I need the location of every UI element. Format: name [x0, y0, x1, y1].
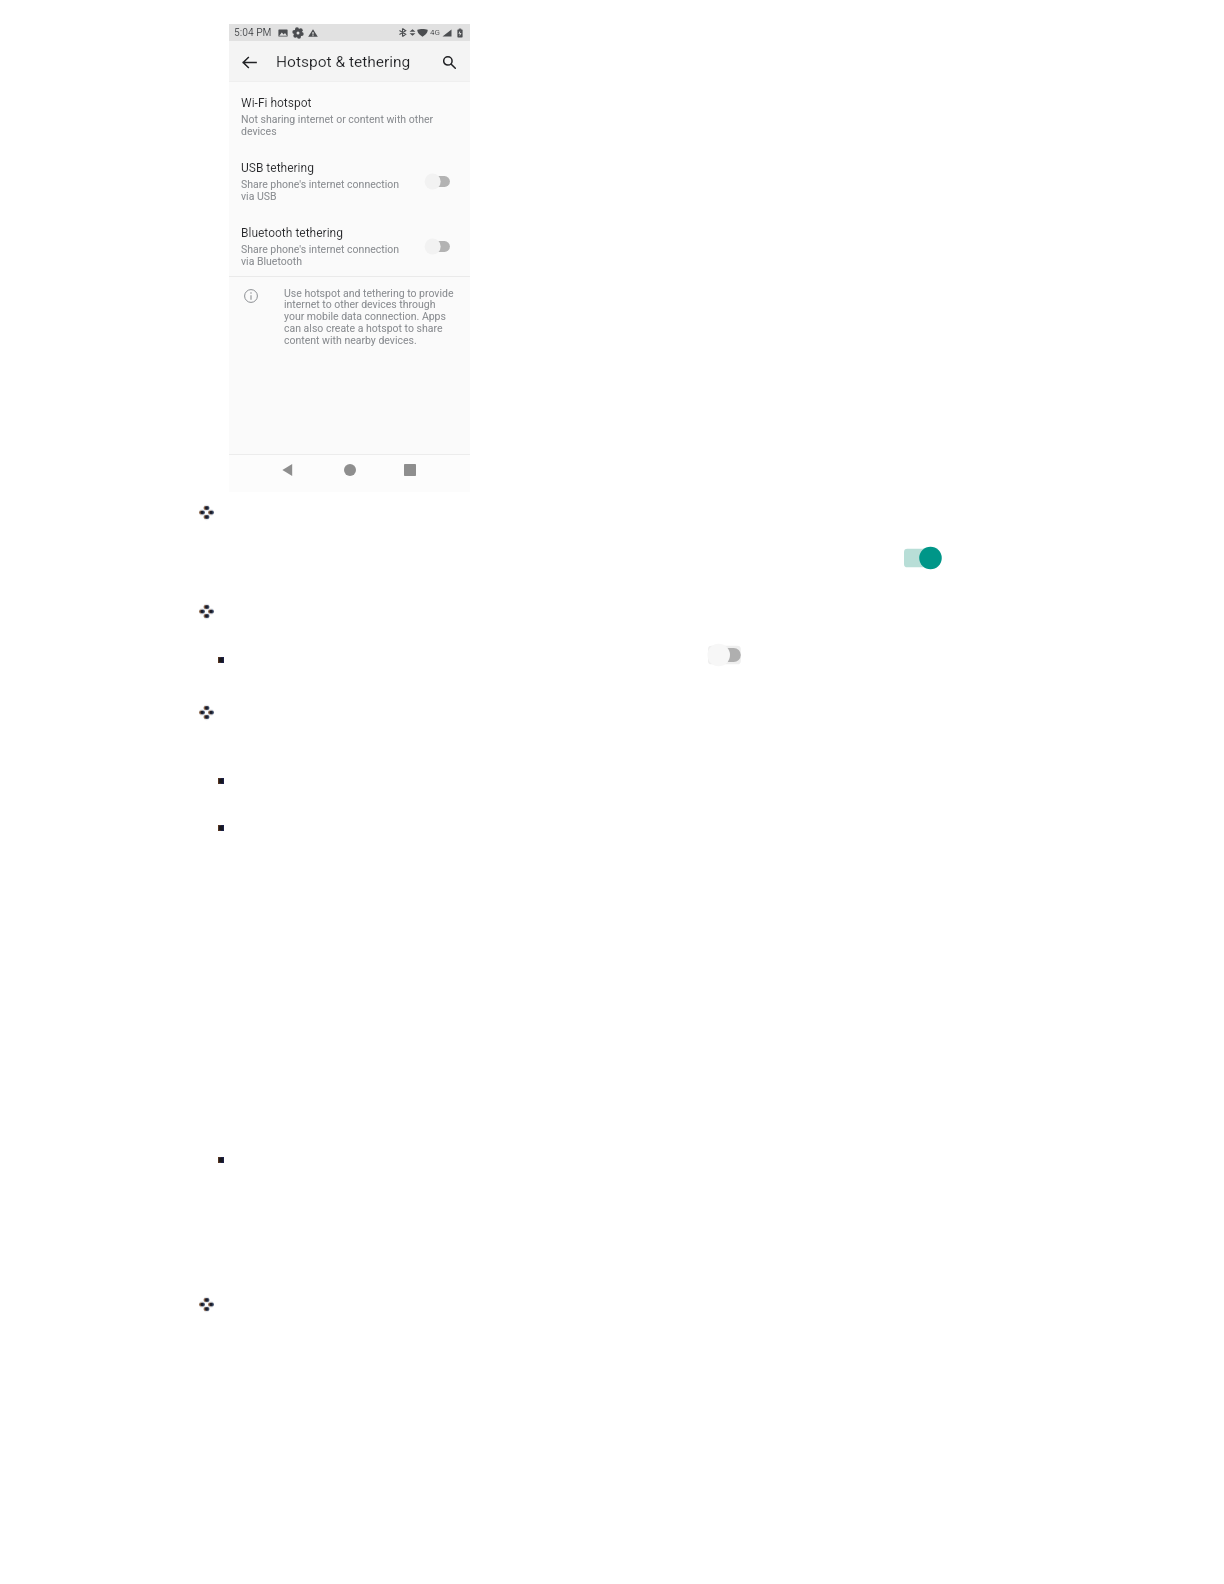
staticText: Wi-Fi hotspot	[241, 96, 312, 110]
staticText: 4G	[430, 28, 440, 37]
button[interactable]: Home	[335, 455, 365, 485]
button[interactable]: Back	[236, 49, 262, 75]
staticText: 5:04 PM	[234, 27, 272, 39]
staticText: Hotspot & tethering	[276, 53, 411, 71]
button[interactable]: Switch on	[902, 546, 942, 570]
staticText: USB tethering	[241, 161, 314, 175]
button[interactable]: Toggle off	[424, 173, 451, 190]
button[interactable]: Toggle off	[424, 238, 451, 255]
button[interactable]: Recents	[395, 455, 425, 485]
staticText: Use hotspot and tethering to provide int…	[284, 287, 457, 347]
staticText: Bluetooth tethering	[241, 226, 343, 240]
button[interactable]: Wi-Fi hotspot	[229, 90, 470, 155]
button[interactable]: Switch off	[706, 643, 746, 667]
button[interactable]: Back	[273, 455, 303, 485]
staticText: Not sharing internet or content with oth…	[241, 113, 441, 137]
staticText: Share phone's internet connection via US…	[241, 178, 413, 202]
button[interactable]: Bluetooth tethering	[229, 220, 470, 285]
button[interactable]: Search	[436, 49, 462, 75]
button[interactable]: USB tethering	[229, 155, 470, 220]
staticText: Share phone's internet connection via Bl…	[241, 243, 413, 267]
